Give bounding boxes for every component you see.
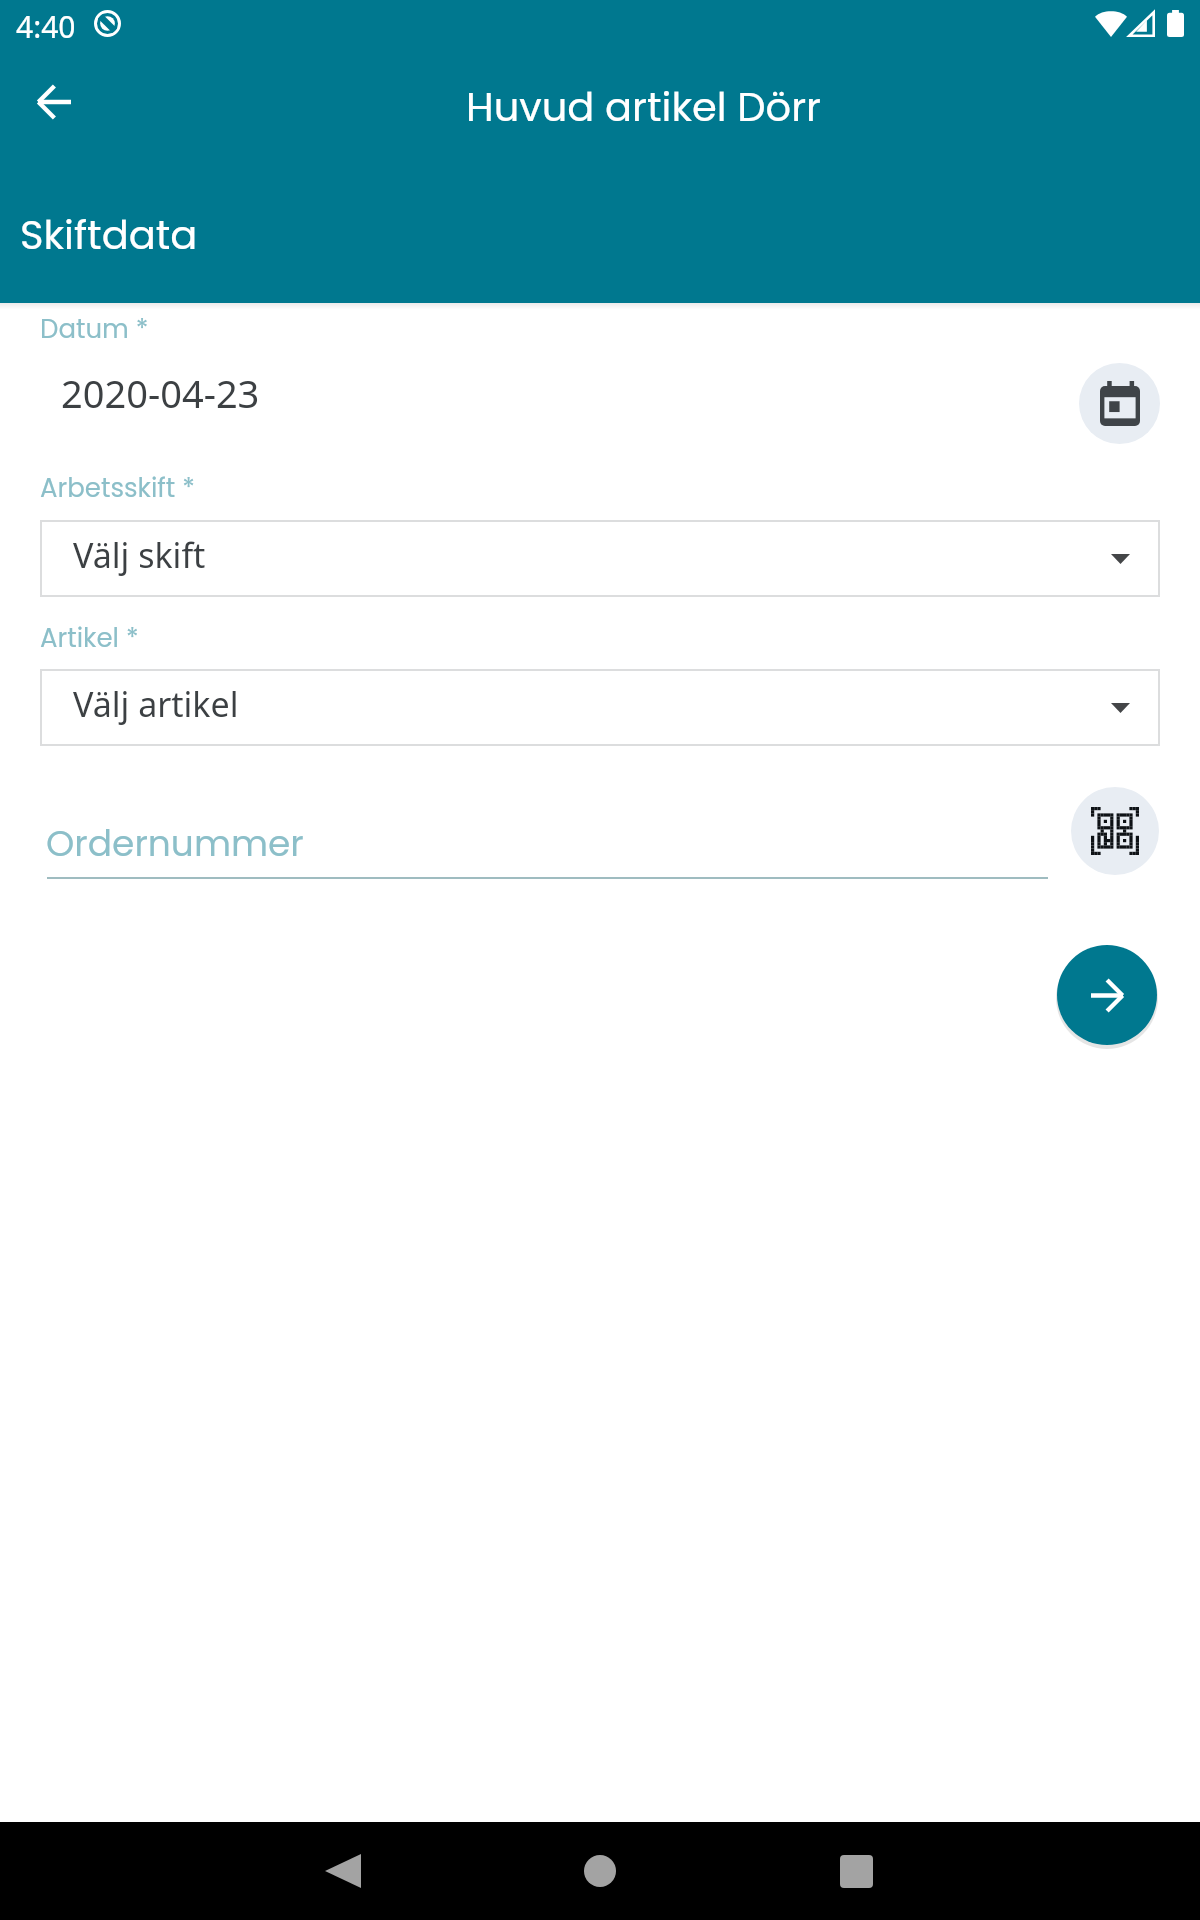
- button[interactable]: Ordernummer: [40, 795, 1048, 879]
- staticText: Ordernummer: [46, 818, 304, 868]
- staticText: Datum *: [40, 311, 149, 347]
- staticText: Arbetsskift *: [40, 470, 195, 506]
- button[interactable]: Scan QR code: [1071, 787, 1159, 875]
- staticText: 2020-04-23: [61, 367, 260, 419]
- staticText: Välj skift: [73, 532, 206, 578]
- staticText: 4:40: [16, 6, 76, 47]
- button[interactable]: Recents: [820, 1835, 892, 1907]
- button[interactable]: Home: [564, 1835, 636, 1907]
- button[interactable]: Back: [307, 1835, 379, 1907]
- staticText: Huvud artikel Dörr: [466, 79, 822, 135]
- staticText: Artikel *: [40, 620, 139, 656]
- staticText: Skiftdata: [20, 207, 198, 263]
- staticText: Välj artikel: [73, 681, 239, 727]
- button[interactable]: Next: [1057, 945, 1157, 1045]
- button[interactable]: Back: [14, 62, 94, 142]
- button[interactable]: Välj artikel: [40, 669, 1160, 746]
- button[interactable]: Välj skift: [40, 520, 1160, 597]
- button[interactable]: Pick date: [1079, 363, 1160, 444]
